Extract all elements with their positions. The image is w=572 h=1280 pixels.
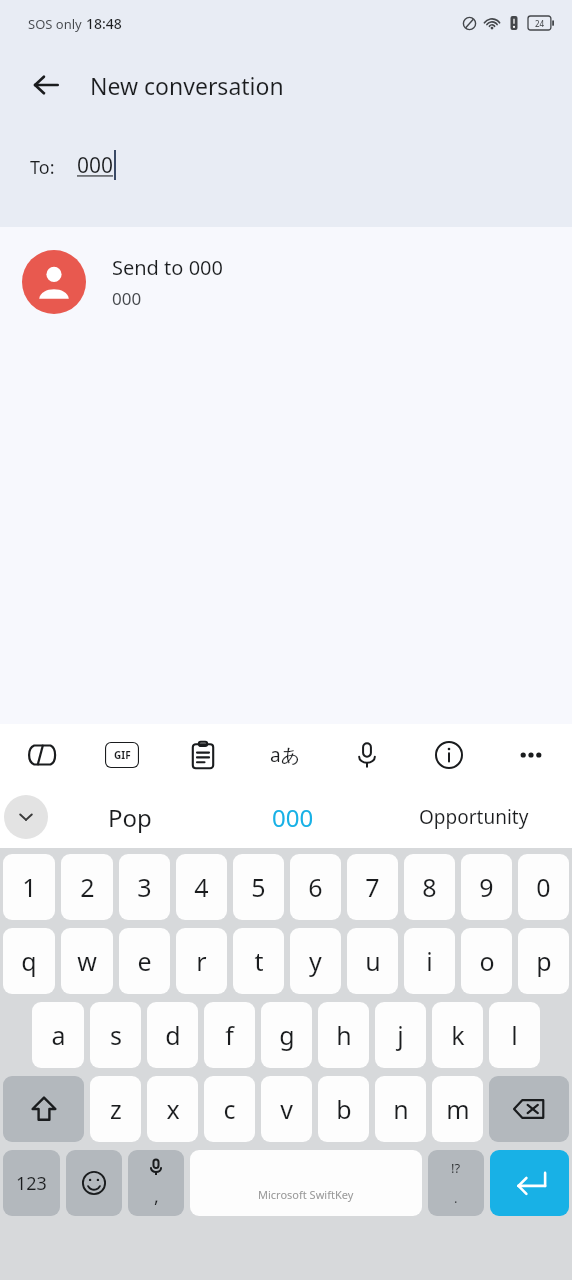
button[interactable]: z	[90, 1076, 141, 1142]
staticText: k	[451, 1018, 465, 1052]
button[interactable]: GIF	[81, 724, 162, 786]
button[interactable]: Info	[408, 724, 490, 786]
staticText: j	[397, 1018, 404, 1052]
staticText: m	[446, 1092, 470, 1126]
button[interactable]: Expand	[4, 795, 48, 839]
staticText: 000	[272, 801, 314, 834]
button[interactable]: Translate	[244, 724, 326, 786]
button[interactable]: 1	[3, 854, 55, 920]
staticText: f	[225, 1018, 234, 1052]
staticText: 9	[479, 870, 494, 904]
button[interactable]: c	[204, 1076, 255, 1142]
button[interactable]: h	[318, 1002, 369, 1068]
button[interactable]: Enter	[490, 1150, 569, 1216]
button[interactable]: Stickers	[0, 724, 81, 786]
button[interactable]: e	[119, 928, 170, 994]
button[interactable]: r	[176, 928, 227, 994]
button[interactable]: w	[61, 928, 113, 994]
button[interactable]: Opportunity	[375, 786, 572, 848]
button[interactable]: Numbers	[3, 1150, 60, 1216]
button[interactable]: j	[375, 1002, 426, 1068]
staticText: r	[196, 944, 207, 978]
button[interactable]: 8	[404, 854, 455, 920]
staticText: To:	[30, 155, 55, 180]
button[interactable]: Voice input	[326, 724, 408, 786]
staticText: b	[336, 1092, 352, 1126]
staticText: y	[309, 944, 322, 978]
staticText: x	[166, 1092, 180, 1126]
button[interactable]: More	[490, 724, 572, 786]
staticText: c	[223, 1092, 236, 1126]
staticText: 000	[77, 151, 114, 180]
button[interactable]: Clipboard	[162, 724, 244, 786]
button[interactable]: s	[90, 1002, 141, 1068]
button[interactable]: t	[233, 928, 284, 994]
staticText: q	[21, 944, 37, 978]
staticText: !?	[451, 1159, 461, 1177]
staticText: t	[254, 944, 264, 978]
staticText: GIF	[114, 748, 131, 762]
staticText: i	[426, 944, 433, 978]
button[interactable]: 2	[61, 854, 113, 920]
staticText: e	[137, 944, 152, 978]
staticText: h	[336, 1018, 352, 1052]
staticText: .	[454, 1189, 458, 1207]
staticText: ,	[154, 1184, 159, 1209]
staticText: w	[77, 944, 97, 978]
button[interactable]: 3	[119, 854, 170, 920]
staticText: aあ	[270, 742, 301, 768]
button[interactable]: Microsoft SwiftKey	[190, 1150, 422, 1216]
staticText: 5	[251, 870, 266, 904]
button[interactable]: g	[261, 1002, 312, 1068]
staticText: z	[110, 1092, 122, 1126]
staticText: 3	[137, 870, 152, 904]
button[interactable]: v	[261, 1076, 312, 1142]
button[interactable]: 9	[461, 854, 512, 920]
staticText: v	[280, 1092, 293, 1126]
button[interactable]: u	[347, 928, 398, 994]
button[interactable]: a	[32, 1002, 84, 1068]
staticText: 123	[16, 1171, 47, 1196]
staticText: 4	[194, 870, 209, 904]
button[interactable]: 000	[211, 786, 375, 848]
button[interactable]: 5	[233, 854, 284, 920]
button[interactable]: l	[489, 1002, 540, 1068]
button[interactable]: i	[404, 928, 455, 994]
button[interactable]: 6	[290, 854, 341, 920]
staticText: Send to 000	[112, 254, 223, 281]
staticText: n	[393, 1092, 409, 1126]
button[interactable]: 0	[518, 854, 569, 920]
button[interactable]: Pop	[48, 786, 211, 848]
button[interactable]: o	[461, 928, 512, 994]
button[interactable]: Comma, voice	[128, 1150, 184, 1216]
button[interactable]: y	[290, 928, 341, 994]
button[interactable]: p	[518, 928, 569, 994]
button[interactable]: m	[432, 1076, 483, 1142]
button[interactable]: Back	[20, 59, 72, 111]
button[interactable]: d	[147, 1002, 198, 1068]
staticText: a	[51, 1018, 66, 1052]
staticText: o	[479, 944, 495, 978]
button[interactable]: b	[318, 1076, 369, 1142]
button[interactable]: 7	[347, 854, 398, 920]
button[interactable]: q	[3, 928, 55, 994]
button[interactable]: Shift	[3, 1076, 84, 1142]
button[interactable]: Send to 000	[0, 227, 572, 337]
button[interactable]: Emoji	[66, 1150, 122, 1216]
staticText: 24	[535, 18, 545, 29]
staticText: New conversation	[90, 70, 284, 101]
button[interactable]: f	[204, 1002, 255, 1068]
staticText: 0	[536, 870, 551, 904]
button[interactable]: Punctuation	[428, 1150, 484, 1216]
button[interactable]: n	[375, 1076, 426, 1142]
staticText: g	[279, 1018, 295, 1052]
button[interactable]: 4	[176, 854, 227, 920]
staticText: 6	[308, 870, 323, 904]
button[interactable]: k	[432, 1002, 483, 1068]
staticText: Pop	[108, 801, 152, 834]
staticText: u	[365, 944, 381, 978]
button[interactable]: Backspace	[489, 1076, 569, 1142]
button[interactable]: x	[147, 1076, 198, 1142]
staticText: l	[511, 1018, 518, 1052]
staticText: d	[165, 1018, 181, 1052]
